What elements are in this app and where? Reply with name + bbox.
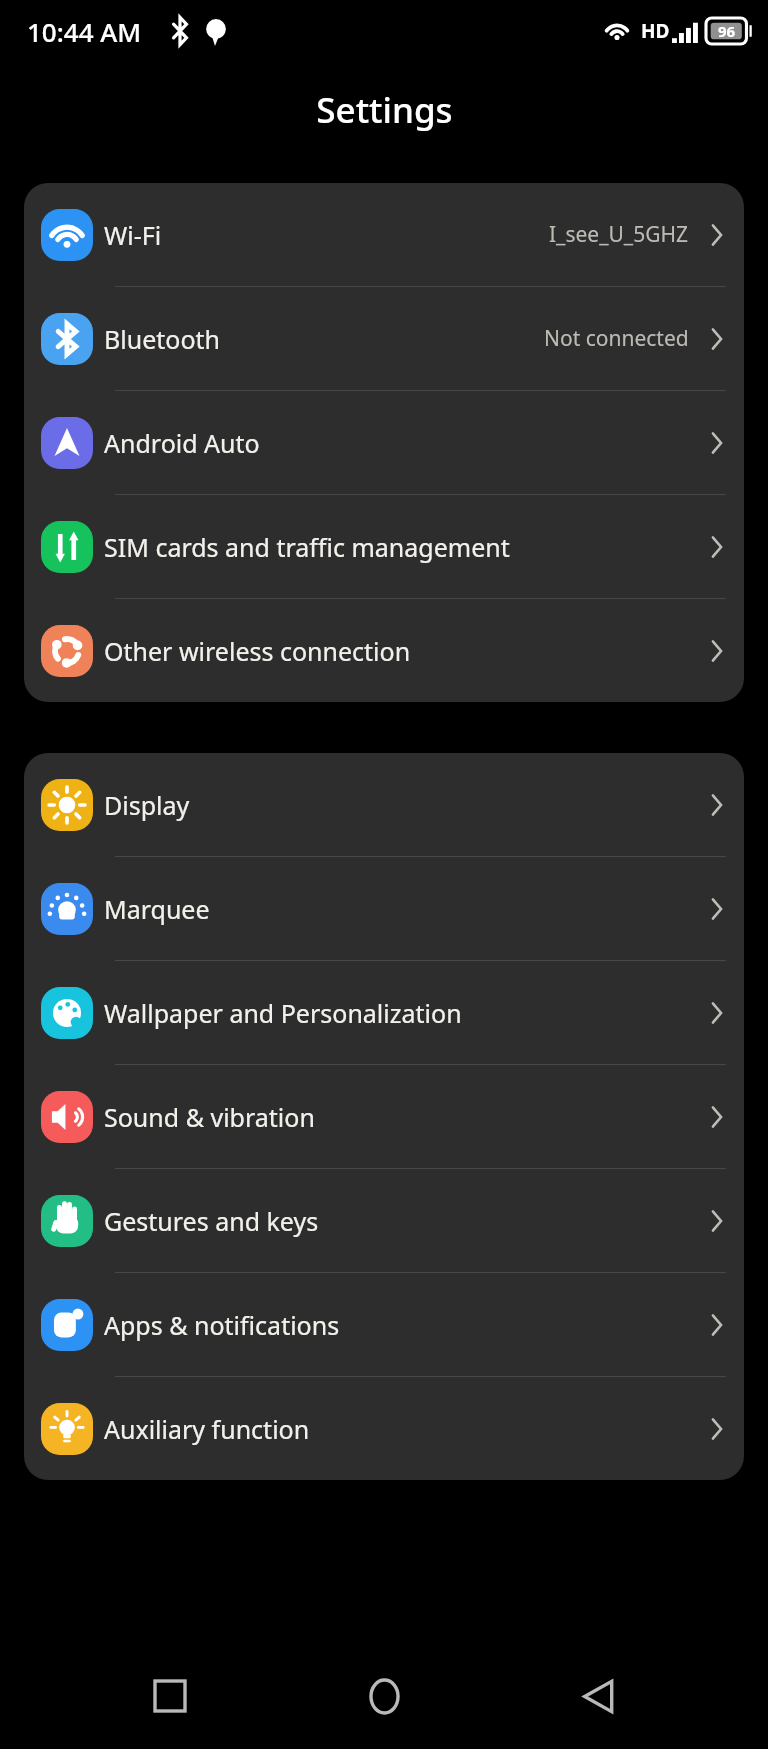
staticText: Gestures and keys <box>104 1204 701 1238</box>
staticText: Settings <box>316 86 453 134</box>
button[interactable]: Other wireless connection <box>24 599 744 702</box>
staticText: Wallpaper and Personalization <box>104 996 701 1030</box>
button[interactable]: Wi-Fi <box>24 183 744 286</box>
staticText: HD <box>641 18 670 44</box>
button[interactable]: Display <box>24 753 744 856</box>
button[interactable]: Auxiliary function <box>24 1377 744 1480</box>
button[interactable]: Marquee <box>24 857 744 960</box>
button[interactable]: Recent apps <box>126 1652 214 1740</box>
button[interactable]: Apps & notifications <box>24 1273 744 1376</box>
staticText: I_see_U_5GHZ <box>549 220 689 249</box>
button[interactable]: Bluetooth <box>24 287 744 390</box>
staticText: Display <box>104 788 701 822</box>
button[interactable]: Sound & vibration <box>24 1065 744 1168</box>
staticText: Auxiliary function <box>104 1412 701 1446</box>
staticText: 96 <box>718 21 736 41</box>
staticText: Android Auto <box>104 426 701 460</box>
staticText: Not connected <box>544 324 689 353</box>
staticText: Bluetooth <box>104 322 544 356</box>
button[interactable]: Back <box>554 1652 642 1740</box>
staticText: Marquee <box>104 892 701 926</box>
staticText: 10:44 AM <box>27 14 142 49</box>
staticText: Wi-Fi <box>104 218 549 252</box>
staticText: Sound & vibration <box>104 1100 701 1134</box>
staticText: SIM cards and traffic management <box>104 530 701 564</box>
button[interactable]: Gestures and keys <box>24 1169 744 1272</box>
button[interactable]: SIM cards and traffic management <box>24 495 744 598</box>
button[interactable]: Wallpaper and Personalization <box>24 961 744 1064</box>
staticText: Other wireless connection <box>104 634 701 668</box>
button[interactable]: Android Auto <box>24 391 744 494</box>
button[interactable]: Home <box>340 1652 428 1740</box>
staticText: Apps & notifications <box>104 1308 701 1342</box>
